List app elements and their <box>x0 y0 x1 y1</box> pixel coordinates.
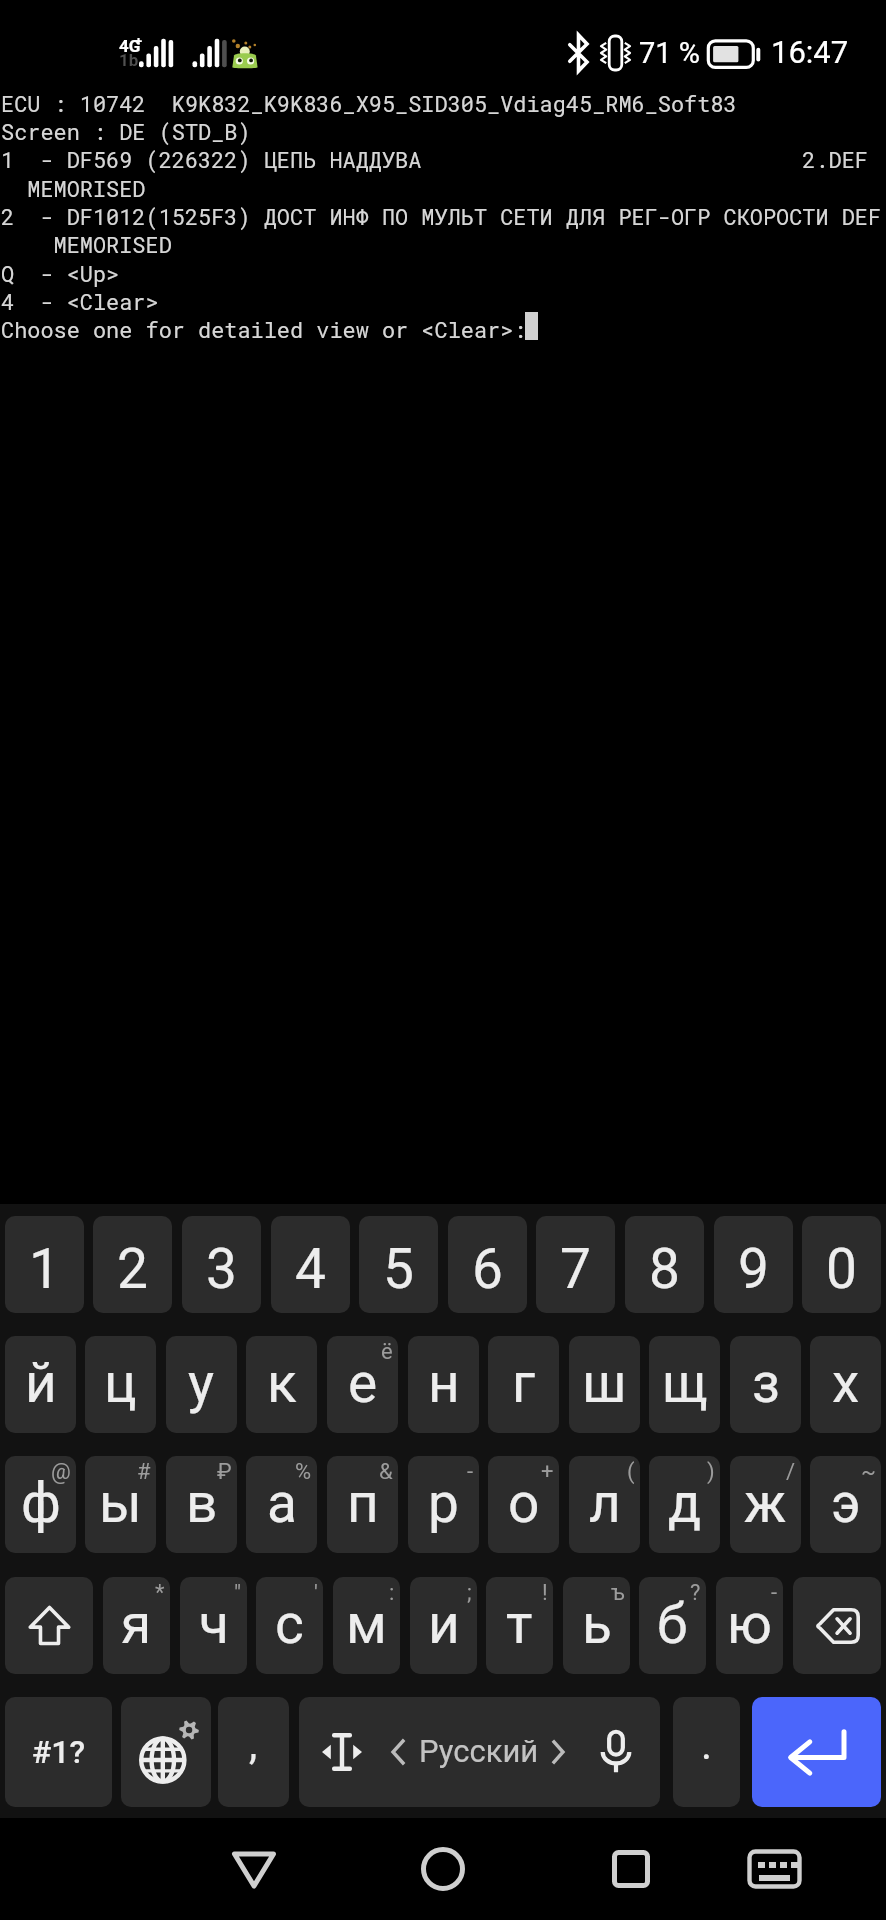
staticText: д <box>668 1471 702 1535</box>
button[interactable]: , <box>218 1697 289 1807</box>
button[interactable]: щ <box>649 1336 720 1433</box>
button[interactable]: 9 <box>714 1216 793 1313</box>
button[interactable]: 3 <box>182 1216 261 1313</box>
button[interactable]: я <box>103 1577 170 1674</box>
staticText: ; <box>467 1580 472 1606</box>
staticText: й <box>25 1351 57 1415</box>
button[interactable]: 5 <box>359 1216 438 1313</box>
button[interactable]: ы <box>85 1456 156 1553</box>
button[interactable]: Hide keyboard <box>729 1818 819 1920</box>
staticText: 0 <box>826 1237 857 1301</box>
button[interactable]: Space <box>299 1697 660 1807</box>
staticText: з <box>752 1351 780 1415</box>
button[interactable]: Recent apps <box>586 1818 676 1920</box>
staticText: б <box>657 1592 688 1656</box>
button[interactable]: . <box>673 1697 740 1807</box>
button[interactable]: Enter <box>752 1697 881 1807</box>
button[interactable]: 6 <box>448 1216 527 1313</box>
button[interactable]: 4 <box>271 1216 350 1313</box>
button[interactable]: Back <box>209 1818 299 1920</box>
staticText: 4G <box>119 36 141 56</box>
button[interactable]: х <box>810 1336 881 1433</box>
staticText: 71 % <box>639 36 701 70</box>
staticText: 9 <box>738 1237 769 1301</box>
button[interactable]: Home <box>398 1818 488 1920</box>
button[interactable]: #1? <box>5 1697 112 1807</box>
staticText: : <box>389 1580 395 1606</box>
staticText: к <box>267 1351 297 1415</box>
button[interactable]: р <box>408 1456 479 1553</box>
staticText: и <box>428 1592 460 1656</box>
button[interactable]: ю <box>716 1577 783 1674</box>
staticText: ! <box>542 1580 548 1606</box>
button[interactable]: в <box>166 1456 237 1553</box>
staticText: 4 <box>295 1237 326 1301</box>
staticText: ф <box>21 1471 61 1535</box>
staticText: ' <box>314 1580 318 1606</box>
staticText: г <box>512 1351 536 1415</box>
staticText: ₽ <box>217 1459 232 1485</box>
button[interactable]: б <box>639 1577 706 1674</box>
button[interactable]: Backspace <box>793 1577 881 1674</box>
staticText: 7 <box>560 1237 591 1301</box>
staticText: / <box>786 1459 796 1485</box>
staticText: Choose one for detailed view or <Clear>: <box>1 315 527 344</box>
staticText: т <box>506 1592 533 1656</box>
staticText: с <box>275 1592 304 1656</box>
button[interactable]: 2 <box>93 1216 172 1313</box>
button[interactable]: д <box>649 1456 720 1553</box>
staticText: ~ <box>861 1459 876 1485</box>
button[interactable]: й <box>5 1336 76 1433</box>
button[interactable]: т <box>486 1577 553 1674</box>
button[interactable]: г <box>488 1336 559 1433</box>
button[interactable]: м <box>333 1577 400 1674</box>
staticText: о <box>508 1471 540 1535</box>
staticText: ю <box>727 1592 772 1656</box>
staticText: 2 <box>117 1237 148 1301</box>
staticText: н <box>428 1351 460 1415</box>
staticText: - <box>467 1459 474 1485</box>
button[interactable]: э <box>810 1456 881 1553</box>
button[interactable]: ц <box>85 1336 156 1433</box>
button[interactable]: о <box>488 1456 559 1553</box>
button[interactable]: к <box>246 1336 317 1433</box>
staticText: м <box>346 1592 387 1656</box>
button[interactable]: п <box>327 1456 398 1553</box>
staticText: % <box>295 1459 312 1485</box>
button[interactable]: 8 <box>625 1216 704 1313</box>
staticText: MEMORISED <box>1 174 146 203</box>
button[interactable]: ф <box>5 1456 76 1553</box>
button[interactable]: 7 <box>536 1216 615 1313</box>
button[interactable]: с <box>256 1577 323 1674</box>
staticText: #1? <box>32 1733 86 1771</box>
button[interactable]: Shift <box>5 1577 93 1674</box>
button[interactable]: з <box>730 1336 801 1433</box>
button[interactable]: Change language <box>121 1697 211 1807</box>
staticText: + <box>135 34 143 49</box>
button[interactable]: ш <box>569 1336 640 1433</box>
button[interactable]: л <box>569 1456 640 1553</box>
staticText: " <box>234 1580 242 1606</box>
button[interactable]: 1 <box>5 1216 84 1313</box>
button[interactable]: ь <box>563 1577 630 1674</box>
button[interactable]: ж <box>730 1456 801 1553</box>
button[interactable]: и <box>410 1577 477 1674</box>
staticText: ы <box>99 1471 142 1535</box>
staticText: р <box>428 1471 459 1535</box>
staticText: * <box>155 1580 165 1606</box>
staticText: л <box>589 1471 621 1535</box>
staticText: Screen : DE (STD_B) <box>1 117 251 146</box>
button[interactable]: н <box>408 1336 479 1433</box>
staticText: 3 <box>206 1237 237 1301</box>
button[interactable]: у <box>166 1336 237 1433</box>
staticText: Q - <Up> <box>1 259 120 288</box>
staticText: Русский <box>419 1733 539 1769</box>
button[interactable]: 0 <box>802 1216 881 1313</box>
staticText: щ <box>662 1351 708 1415</box>
button[interactable]: е <box>327 1336 398 1433</box>
button[interactable]: а <box>246 1456 317 1553</box>
staticText: ж <box>744 1471 787 1535</box>
staticText: ) <box>707 1459 715 1485</box>
staticText: 1 <box>29 1237 60 1301</box>
button[interactable]: ч <box>180 1577 247 1674</box>
